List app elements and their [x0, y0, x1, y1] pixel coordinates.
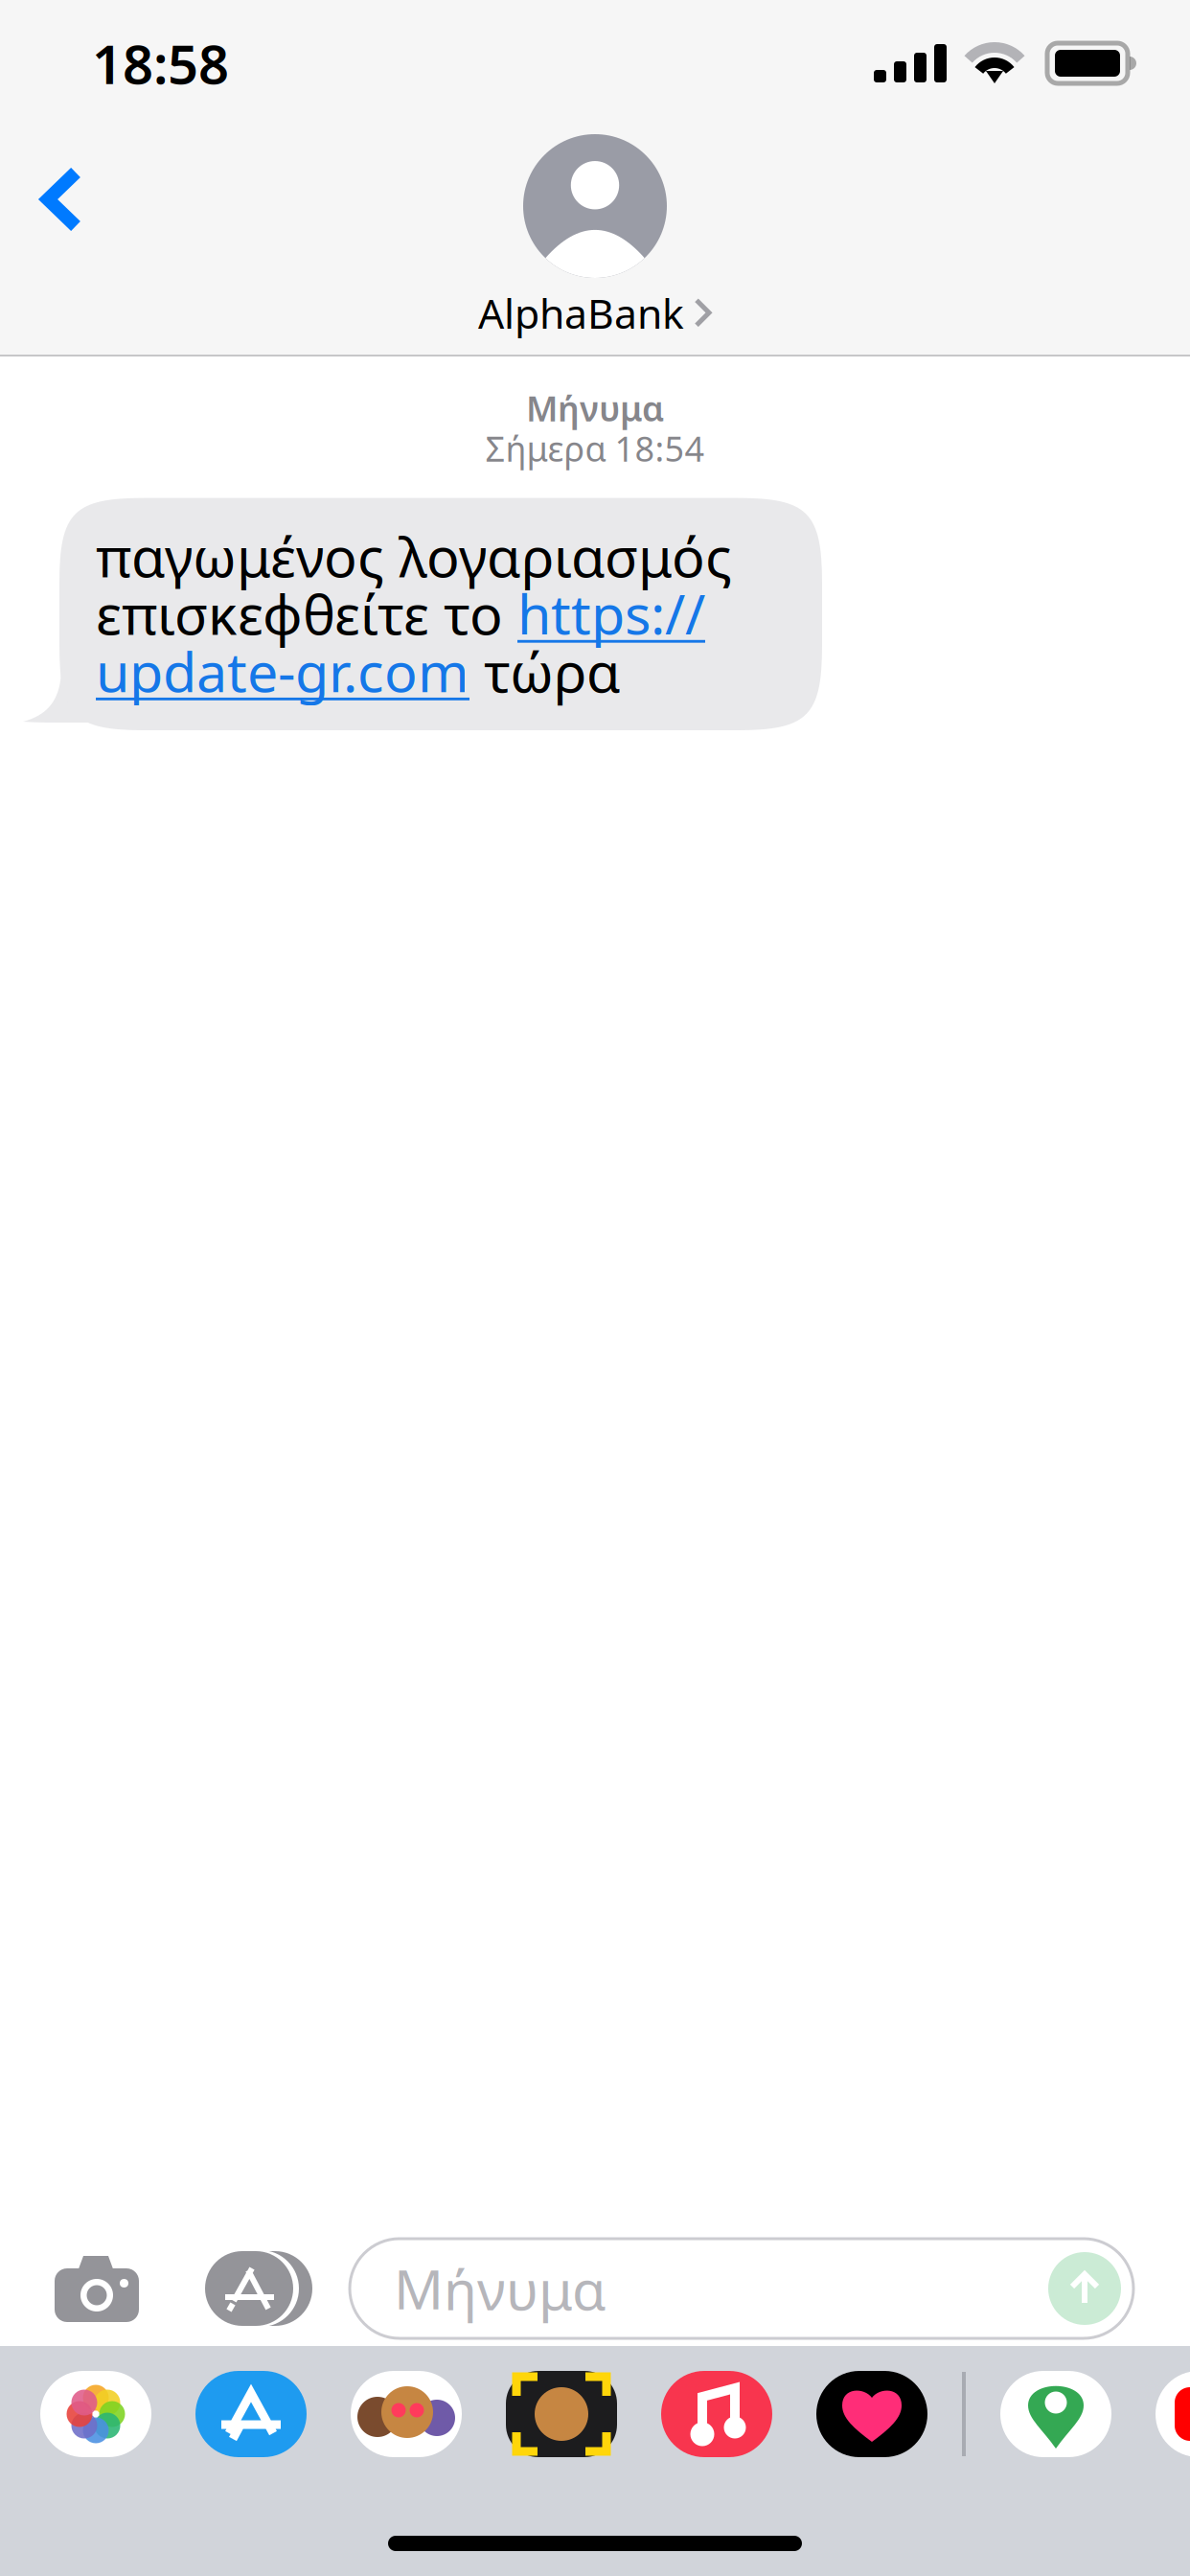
button[interactable]: Memoji [484, 2361, 639, 2467]
staticText: Μήνυμα [394, 2252, 606, 2325]
staticText: παγωμένος λογαριασμός επισκεφθείτε το ht… [96, 519, 732, 707]
button[interactable]: Back [0, 126, 120, 268]
button[interactable]: Health [794, 2361, 950, 2467]
button[interactable]: Maps [978, 2361, 1133, 2467]
staticText: 18:58 [92, 28, 229, 99]
button[interactable]: Send [1042, 2246, 1127, 2331]
button[interactable]: YouTube [1133, 2361, 1190, 2467]
staticText: Μήνυμα [526, 385, 664, 431]
button[interactable]: Memoji Stickers [329, 2361, 484, 2467]
button[interactable]: App Store [173, 2361, 329, 2467]
button[interactable]: Photos [18, 2361, 173, 2467]
button[interactable]: AlphaBank details [440, 134, 750, 340]
staticText: Σήμερα 18:54 [485, 425, 705, 471]
staticText: AlphaBank [478, 286, 684, 340]
button[interactable]: App Store [168, 2236, 350, 2341]
button[interactable]: Music [639, 2361, 794, 2467]
button[interactable]: Camera [26, 2236, 168, 2341]
